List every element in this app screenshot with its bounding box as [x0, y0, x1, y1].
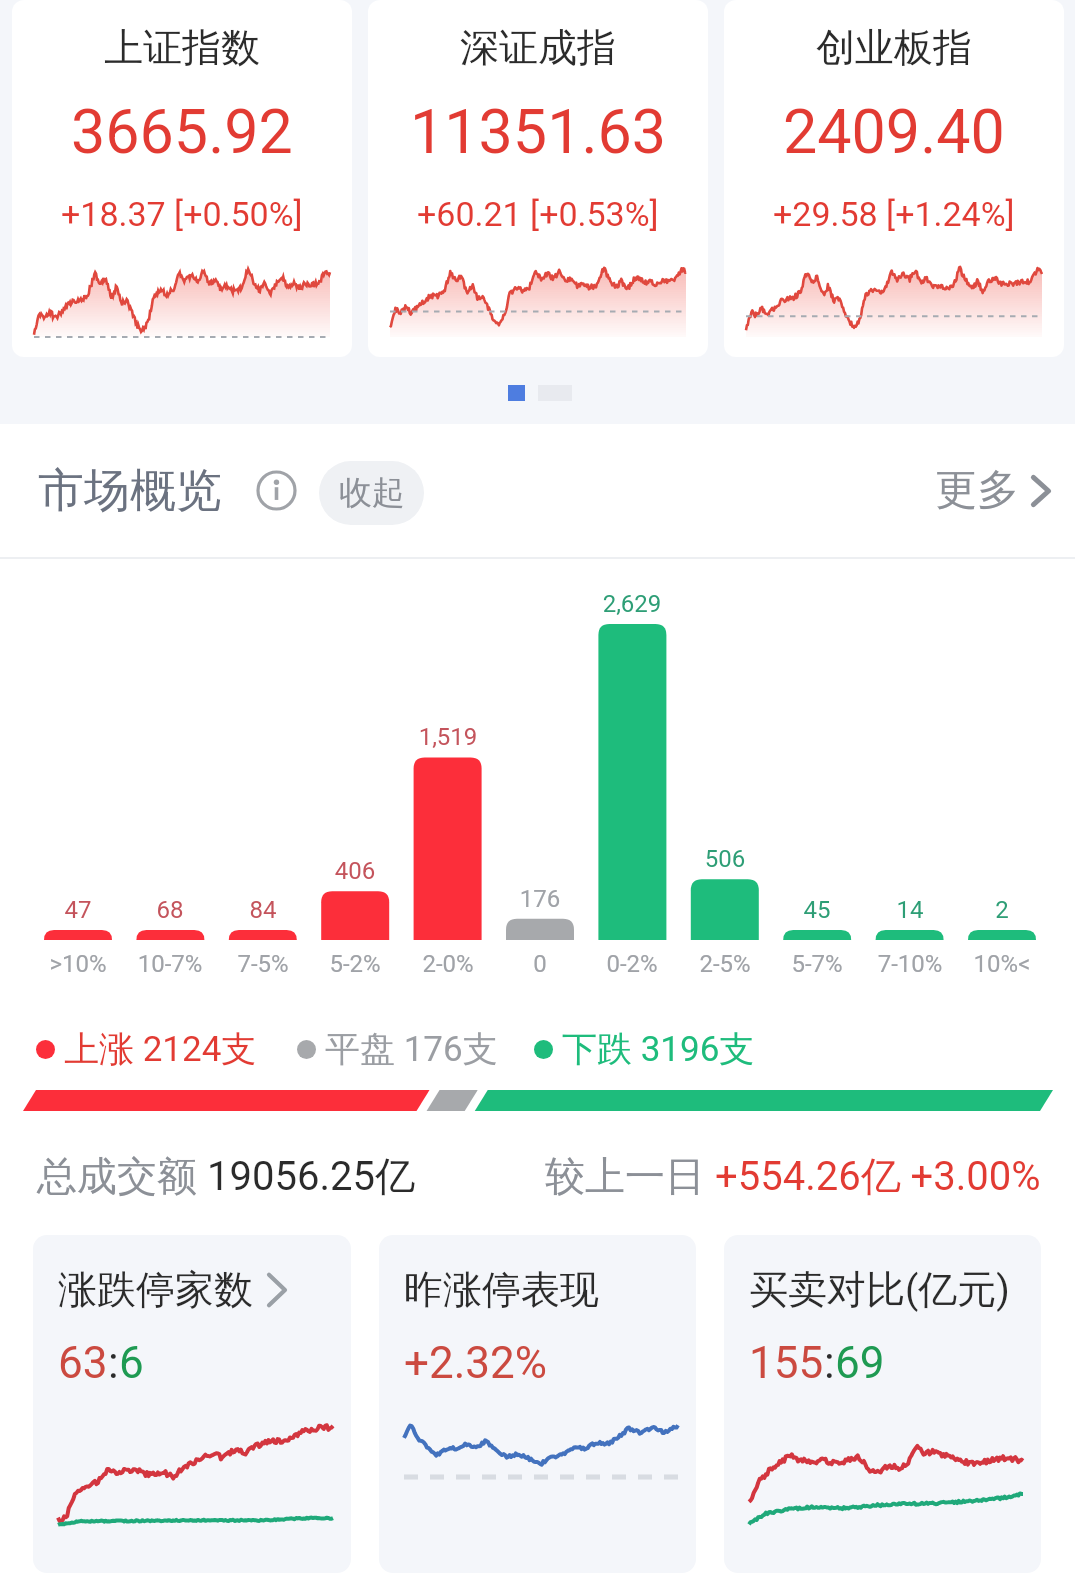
staticText: +2.32% [404, 1337, 547, 1389]
button[interactable]: 买卖对比(亿元) [724, 1235, 1041, 1573]
staticText: 69 [835, 1337, 885, 1389]
staticText: 平盘 176支 [325, 1027, 498, 1071]
staticText: 45 [757, 896, 877, 924]
staticText: 176 [480, 885, 600, 913]
staticText: +60.21 [+0.53%] [417, 194, 659, 234]
staticText: 14 [850, 896, 970, 924]
button[interactable]: 指标说明 [256, 470, 297, 511]
button[interactable]: 创业板指 [724, 0, 1064, 357]
staticText: 10%< [942, 950, 1062, 978]
staticText: 19056.25亿 [207, 1151, 415, 1201]
staticText: 7-10% [850, 950, 970, 978]
staticText: : [108, 1337, 119, 1389]
staticText: 上证指数 [104, 23, 260, 72]
staticText: 5-7% [757, 950, 877, 978]
staticText: 深证成指 [460, 23, 616, 72]
staticText: 2-0% [388, 950, 508, 978]
staticText: +18.37 [+0.50%] [61, 194, 303, 234]
staticText: 昨涨停表现 [404, 1265, 599, 1314]
staticText: 较上一日 [545, 1151, 715, 1201]
button[interactable]: 收起 [319, 461, 424, 525]
staticText: 收起 [339, 472, 405, 514]
staticText: 84 [203, 896, 323, 924]
staticText: 2409.40 [783, 96, 1005, 167]
staticText: 0-2% [572, 950, 692, 978]
staticText: 2 [942, 896, 1062, 924]
staticText: 市场概览 [38, 462, 222, 520]
button[interactable]: 深证成指 [368, 0, 708, 357]
staticText: : [824, 1337, 835, 1389]
button[interactable]: 昨涨停表现 [379, 1235, 696, 1573]
button[interactable]: 涨跌停家数 [33, 1235, 351, 1573]
staticText: 2,629 [572, 590, 692, 618]
staticText: 买卖对比(亿元) [749, 1265, 1010, 1314]
staticText: 创业板指 [816, 23, 972, 72]
staticText: 506 [665, 845, 785, 873]
staticText: 总成交额 [37, 1151, 207, 1201]
staticText: 涨跌停家数 [58, 1265, 253, 1314]
staticText: 6 [119, 1337, 144, 1389]
staticText: 11351.63 [410, 96, 667, 167]
staticText: 2-5% [665, 950, 785, 978]
staticText: 下跌 3196支 [562, 1027, 755, 1071]
staticText: 10-7% [110, 950, 230, 978]
staticText: 5-2% [295, 950, 415, 978]
staticText: 406 [295, 857, 415, 885]
staticText: 63 [58, 1337, 108, 1389]
staticText: +554.26亿 +3.00% [715, 1151, 1041, 1201]
staticText: 0 [480, 950, 600, 978]
staticText: 68 [110, 896, 230, 924]
staticText: 1,519 [388, 723, 508, 751]
staticText: 155 [749, 1337, 824, 1389]
staticText: >10% [18, 950, 138, 978]
staticText: 更多 [935, 464, 1019, 517]
staticText: 47 [18, 896, 138, 924]
button[interactable]: 上证指数 [12, 0, 352, 357]
staticText: 7-5% [203, 950, 323, 978]
staticText: 3665.92 [71, 96, 293, 167]
button[interactable]: 更多 [931, 460, 1055, 521]
staticText: 上涨 2124支 [64, 1027, 257, 1071]
staticText: +29.58 [+1.24%] [773, 194, 1015, 234]
